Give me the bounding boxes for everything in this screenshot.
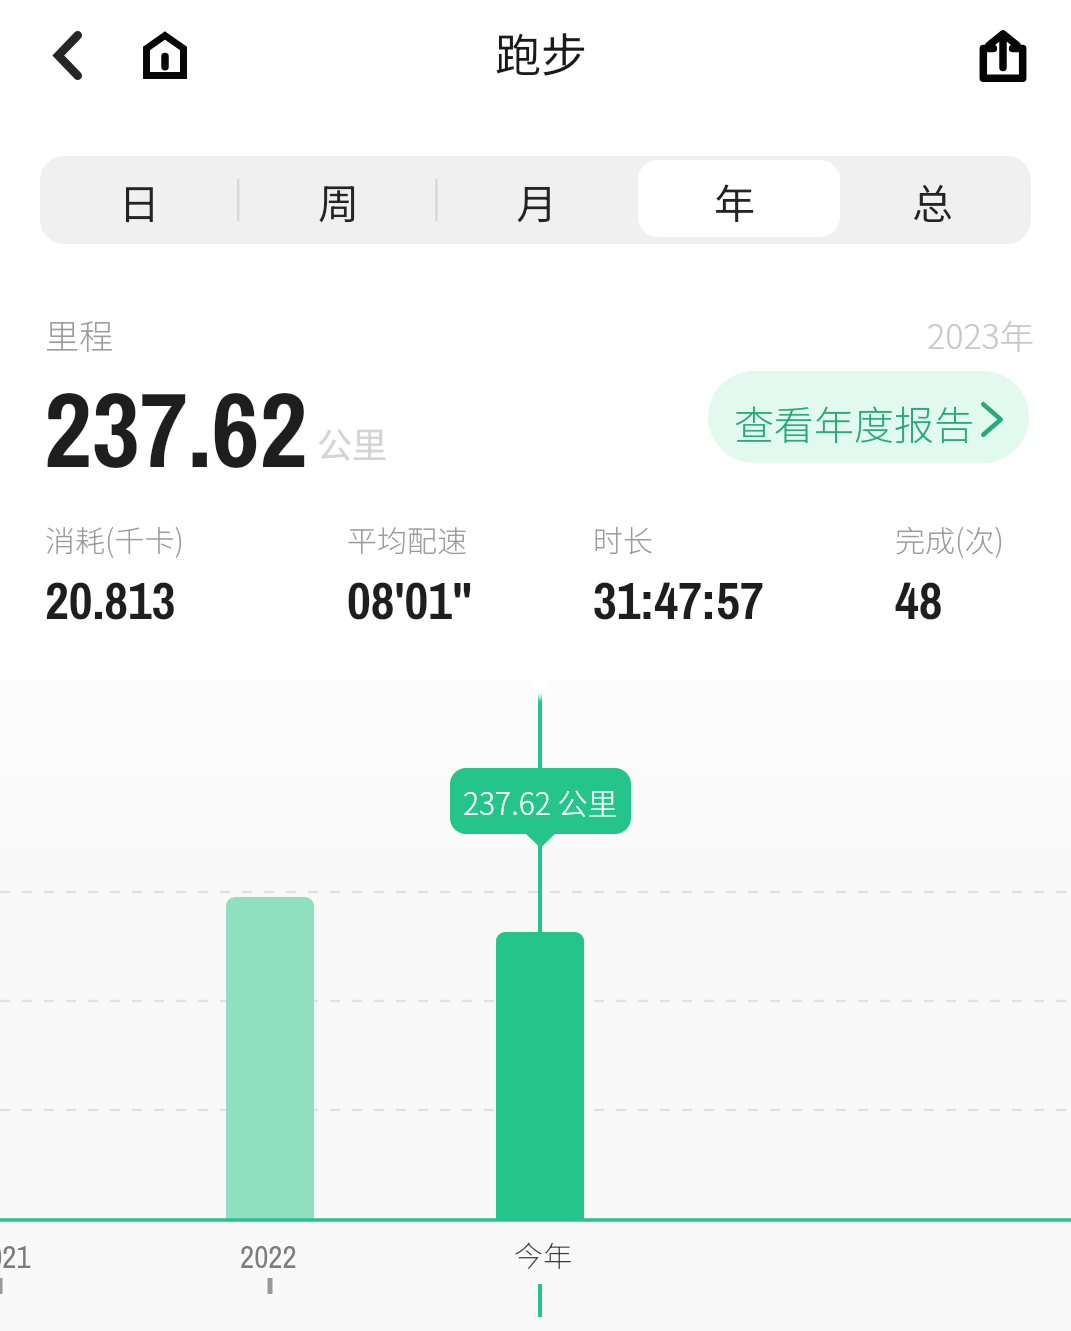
staticText: 平均配速 bbox=[347, 517, 467, 560]
staticText: 完成(次) bbox=[895, 517, 1004, 560]
button[interactable]: 查看年度报告 bbox=[708, 371, 1029, 463]
staticText: 今年 bbox=[514, 1233, 573, 1275]
staticText: 年 bbox=[714, 171, 755, 230]
staticText: 237.62 bbox=[44, 358, 308, 499]
button[interactable]: 月 bbox=[437, 156, 635, 244]
staticText: 日 bbox=[119, 171, 160, 230]
staticText: 48 bbox=[895, 565, 943, 635]
staticText: 08'01" bbox=[347, 565, 473, 635]
staticText: 2022 bbox=[240, 1236, 297, 1278]
staticText: 查看年度报告 bbox=[734, 394, 974, 452]
button[interactable]: Home bbox=[119, 9, 211, 101]
button[interactable]: Share bbox=[957, 10, 1049, 102]
staticText: 20.813 bbox=[45, 565, 176, 635]
staticText: 里程 bbox=[45, 310, 113, 359]
staticText: 31:47:57 bbox=[593, 565, 764, 635]
staticText: 周 bbox=[318, 171, 359, 230]
button[interactable]: Back bbox=[22, 9, 114, 101]
button[interactable]: 周 bbox=[239, 156, 437, 244]
staticText: 公里 bbox=[317, 417, 388, 468]
staticText: 2021 bbox=[0, 1236, 31, 1278]
staticText: 月 bbox=[516, 171, 557, 230]
button[interactable]: 总 bbox=[833, 156, 1031, 244]
staticText: 237.62 公里 bbox=[463, 780, 618, 823]
staticText: 2023年 bbox=[927, 310, 1034, 359]
staticText: 跑步 bbox=[495, 19, 587, 86]
staticText: 总 bbox=[912, 171, 953, 230]
button[interactable]: 日 bbox=[40, 156, 239, 244]
staticText: 时长 bbox=[593, 517, 653, 560]
button[interactable]: 年 bbox=[635, 156, 833, 244]
staticText: 消耗(千卡) bbox=[45, 517, 184, 560]
